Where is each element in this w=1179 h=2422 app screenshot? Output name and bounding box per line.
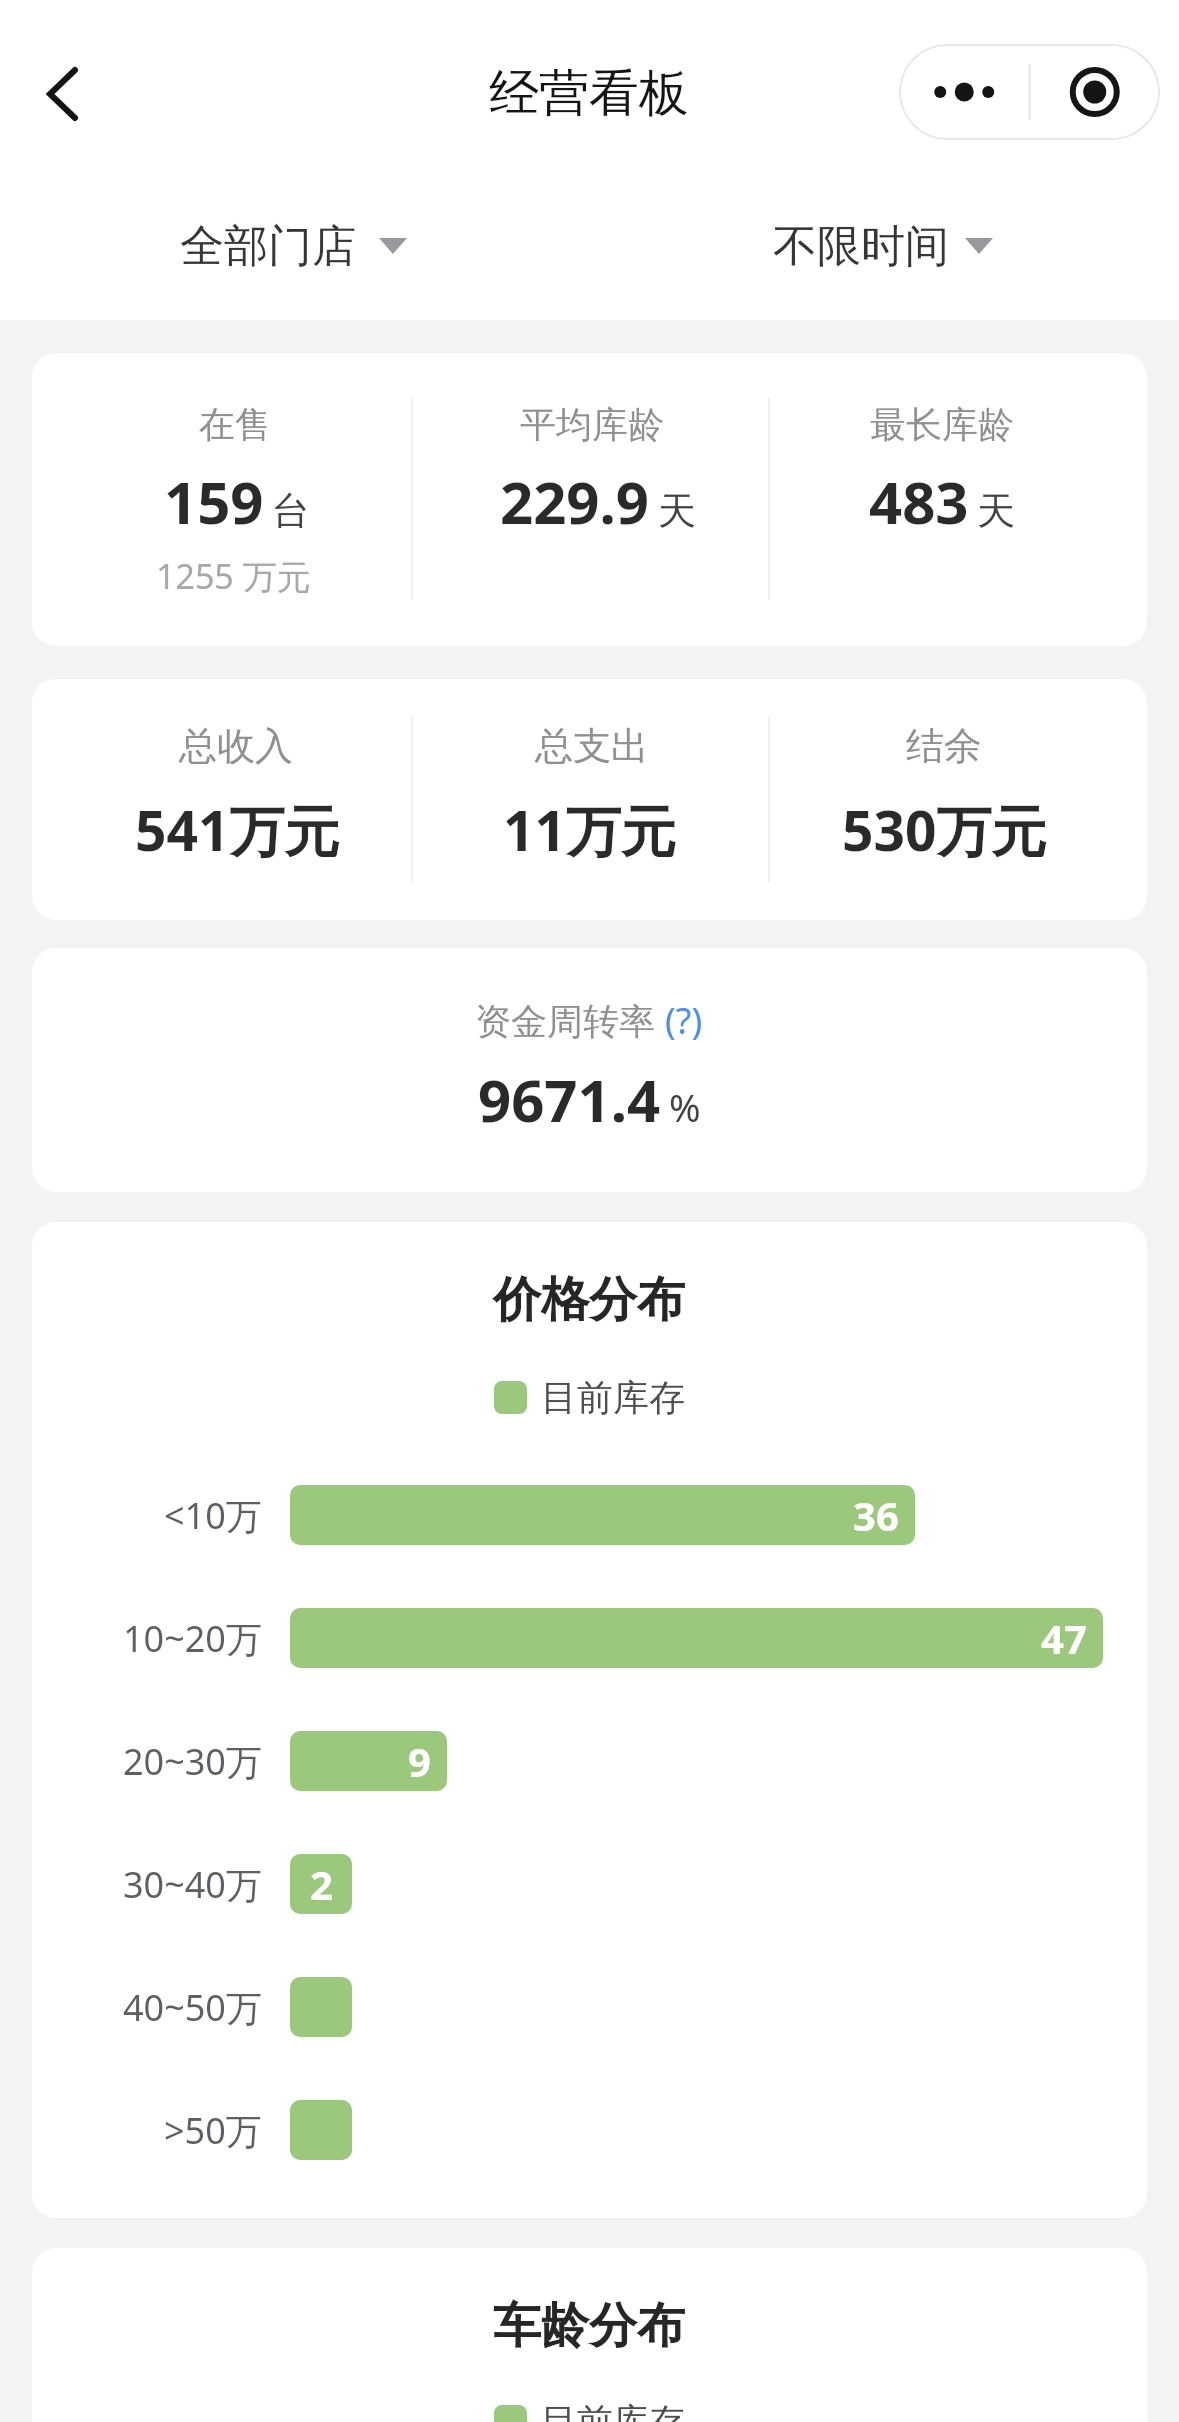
staticText: 平均库龄: [520, 402, 664, 447]
staticText: 天: [658, 487, 696, 535]
staticText: 47: [1041, 1611, 1087, 1665]
staticText: 229.9: [500, 462, 650, 541]
staticText: %: [669, 1081, 701, 1133]
staticText: 30~40万: [123, 1860, 262, 1909]
staticText: 台: [272, 487, 310, 535]
staticText: 总收入: [179, 722, 293, 770]
staticText: 541万元: [135, 792, 340, 867]
staticText: 车龄分布: [493, 2296, 685, 2356]
staticText: 20~30万: [123, 1737, 262, 1786]
staticText: <10万: [164, 1491, 262, 1540]
staticText: 530万元: [842, 792, 1047, 867]
staticText: 483: [869, 462, 969, 541]
button[interactable]: [899, 44, 1029, 140]
staticText: (?): [665, 996, 703, 1045]
staticText: 40~50万: [123, 1983, 262, 2032]
staticText: 36: [853, 1488, 899, 1542]
staticText: 价格分布: [493, 1270, 685, 1330]
staticText: 资金周转率: [475, 996, 665, 1045]
staticText: 全部门店: [180, 219, 356, 274]
staticText: 天: [977, 487, 1015, 535]
staticText: 总支出: [535, 722, 649, 770]
staticText: 9: [408, 1734, 431, 1788]
staticText: 在售: [199, 402, 271, 447]
staticText: 11万元: [503, 792, 676, 867]
staticText: 最长库龄: [870, 402, 1014, 447]
staticText: >50万: [164, 2106, 262, 2155]
button[interactable]: [620, 172, 1060, 320]
staticText: 结余: [906, 722, 982, 770]
button[interactable]: [150, 172, 590, 320]
button[interactable]: [30, 55, 110, 135]
staticText: 经营看板: [489, 62, 689, 125]
staticText: 9671.4: [478, 1060, 661, 1139]
staticText: 目前库存: [541, 2399, 685, 2422]
staticText: 目前库存: [541, 1375, 685, 1420]
button[interactable]: [1029, 44, 1160, 140]
staticText: 不限时间: [773, 219, 949, 274]
staticText: 159: [164, 462, 264, 541]
staticText: 2: [310, 1857, 333, 1911]
staticText: 1255 万元: [156, 553, 311, 599]
staticText: 10~20万: [123, 1614, 262, 1663]
